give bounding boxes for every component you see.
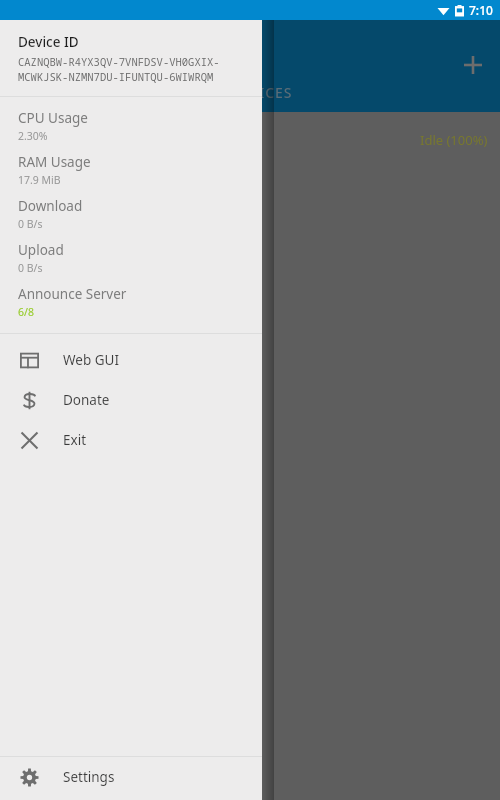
staticText: 17.9 MiB: [18, 173, 61, 187]
button[interactable]: Upload: [0, 236, 262, 280]
staticText: 0 B/s: [18, 217, 43, 231]
button[interactable]: Exit: [0, 420, 262, 460]
button[interactable]: Donate: [0, 380, 262, 420]
staticText: DEVICES: [230, 83, 293, 102]
button[interactable]: RAM Usage: [0, 148, 262, 192]
button[interactable]: Announce Server: [0, 280, 262, 324]
staticText: RAM Usage: [18, 153, 91, 171]
staticText: Device ID: [18, 33, 79, 51]
staticText: 2.30%: [18, 129, 48, 143]
staticText: Upload: [18, 241, 64, 259]
staticText: CPU Usage: [18, 109, 88, 127]
staticText: 6/8: [18, 305, 34, 319]
staticText: Donate: [63, 391, 110, 409]
staticText: 7:10: [469, 2, 493, 18]
staticText: 0 B/s: [18, 261, 43, 275]
staticText: Exit: [63, 431, 87, 449]
staticText: Announce Server: [18, 285, 127, 303]
staticText: Download: [18, 197, 83, 215]
staticText: CAZNQBW-R4YX3QV-7VNFDSV-VH0GXIX- MCWKJSK…: [18, 55, 220, 84]
button[interactable]: CPU Usage: [0, 104, 262, 148]
staticText: Settings: [63, 768, 115, 786]
button[interactable]: Settings: [0, 757, 262, 797]
button[interactable]: Device ID: [0, 20, 262, 96]
staticText: Web GUI: [63, 351, 119, 369]
staticText: Idle (100%): [420, 131, 488, 149]
button[interactable]: Add device: [452, 44, 494, 86]
button[interactable]: Download: [0, 192, 262, 236]
button[interactable]: Web GUI: [0, 340, 262, 380]
button[interactable]: DEVICES: [230, 72, 293, 112]
